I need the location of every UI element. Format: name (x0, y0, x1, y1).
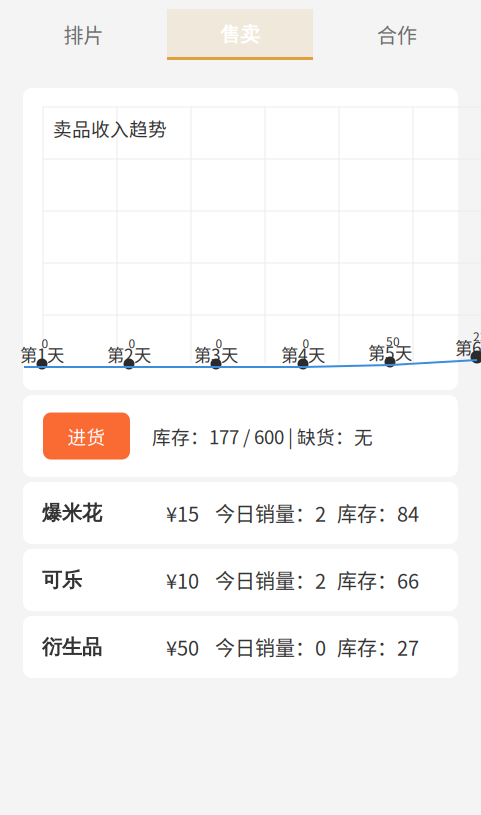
staticText: ¥10 (166, 565, 199, 594)
button[interactable]: 进货 (43, 412, 130, 459)
staticText: 售卖 (220, 22, 260, 47)
staticText: 0 (41, 334, 48, 352)
staticText: 第5天 (368, 339, 412, 365)
staticText: 50 (386, 332, 400, 350)
staticText: 今日销量：2 (215, 565, 326, 594)
button[interactable]: 爆米花 (23, 482, 458, 544)
staticText: 第2天 (107, 341, 151, 367)
staticText: 今日销量：0 (215, 632, 326, 661)
staticText: 库存：27 (337, 632, 419, 661)
button[interactable]: 排片 (0, 9, 167, 60)
staticText: 第3天 (194, 341, 238, 367)
staticText: 第6天 (455, 334, 481, 360)
staticText: ¥15 (166, 498, 199, 527)
staticText: 爆米花 (42, 500, 102, 526)
button[interactable]: 衍生品 (23, 616, 458, 678)
staticText: 22 (473, 327, 481, 345)
staticText: 第4天 (281, 341, 325, 367)
staticText: 第1天 (20, 341, 64, 367)
staticText: 今日销量：2 (215, 498, 326, 527)
staticText: 可乐 (42, 567, 82, 593)
button[interactable]: 售卖 (167, 9, 313, 60)
staticText: 进货 (67, 422, 105, 449)
staticText: 库存：84 (337, 498, 419, 527)
staticText: 库存：66 (337, 565, 419, 594)
button[interactable]: 合作 (313, 9, 481, 60)
staticText: 排片 (63, 20, 103, 49)
button[interactable]: 可乐 (23, 549, 458, 611)
staticText: 0 (215, 334, 222, 352)
staticText: ¥50 (166, 632, 199, 661)
staticText: 0 (128, 334, 135, 352)
staticText: 合作 (377, 20, 417, 49)
staticText: 衍生品 (42, 634, 102, 660)
staticText: 库存：177 / 600 | 缺货：无 (152, 422, 373, 449)
staticText: 卖品收入趋势 (53, 114, 167, 141)
staticText: 0 (302, 334, 309, 352)
